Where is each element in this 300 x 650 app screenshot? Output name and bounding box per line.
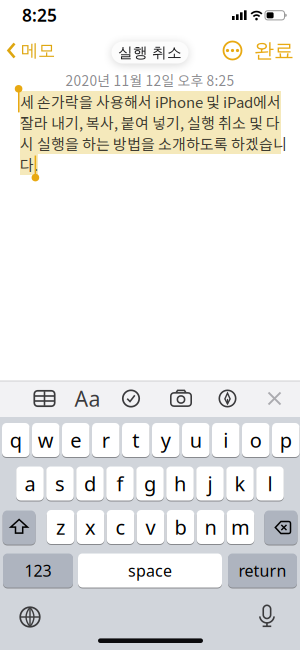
staticText: 잘라 내기, 복사, 붙여 넣기, 실행 취소 및 다	[20, 112, 280, 133]
button[interactable]: Markup	[218, 389, 236, 407]
button[interactable]: z	[47, 509, 74, 544]
staticText: 메모	[21, 40, 55, 61]
button[interactable]: More	[222, 40, 242, 60]
button[interactable]: Dictate	[256, 604, 278, 627]
button[interactable]: k	[226, 466, 254, 501]
button[interactable]: Next keyboard	[19, 606, 40, 627]
button[interactable]: x	[77, 509, 104, 544]
staticText: x	[85, 514, 96, 540]
staticText: f	[116, 470, 123, 497]
button[interactable]: 실행 취소	[111, 41, 188, 63]
button[interactable]: o	[242, 422, 270, 457]
staticText: d	[84, 470, 96, 497]
button[interactable]: space	[78, 553, 222, 588]
staticText: n	[204, 514, 216, 540]
staticText: return	[238, 560, 286, 581]
staticText: z	[56, 514, 65, 540]
staticText: o	[250, 427, 262, 453]
button[interactable]: f	[106, 466, 134, 501]
staticText: 8:25	[22, 3, 57, 26]
staticText: e	[70, 427, 81, 453]
staticText: 완료	[254, 38, 294, 63]
staticText: l	[267, 470, 272, 497]
button[interactable]: v	[137, 509, 164, 544]
button[interactable]: y	[152, 422, 180, 457]
button[interactable]: w	[32, 422, 60, 457]
button[interactable]: 123	[3, 553, 73, 588]
button[interactable]: Insert table	[33, 390, 55, 407]
staticText: v	[145, 514, 155, 540]
staticText: m	[231, 514, 250, 540]
staticText: g	[144, 470, 156, 497]
staticText: s	[55, 470, 65, 497]
staticText: y	[161, 427, 171, 453]
button[interactable]: l	[256, 466, 284, 501]
button[interactable]: Camera	[170, 389, 192, 407]
staticText: a	[24, 470, 35, 497]
staticText: space	[128, 560, 172, 581]
button[interactable]: Shift	[3, 510, 35, 545]
staticText: 123	[24, 560, 51, 581]
staticText: w	[38, 427, 54, 453]
button[interactable]: i	[212, 422, 240, 457]
button[interactable]: n	[197, 509, 224, 544]
staticText: t	[132, 427, 139, 453]
button[interactable]: d	[76, 466, 104, 501]
staticText: p	[280, 427, 292, 453]
button[interactable]: g	[136, 466, 164, 501]
staticText: r	[102, 427, 110, 453]
staticText: c	[115, 514, 125, 540]
staticText: q	[10, 427, 22, 453]
button[interactable]: e	[62, 422, 90, 457]
staticText: 시 실행을 하는 방법을 소개하도록 하겠습니	[20, 133, 287, 154]
button[interactable]: b	[167, 509, 194, 544]
button[interactable]: 메모	[0, 40, 55, 61]
button[interactable]: q	[2, 422, 30, 457]
button[interactable]: 완료	[254, 38, 294, 63]
staticText: h	[174, 470, 186, 497]
staticText: i	[223, 427, 228, 453]
button[interactable]: s	[46, 466, 74, 501]
button[interactable]: t	[122, 422, 150, 457]
button[interactable]: Checklist	[122, 389, 140, 407]
staticText: 세 손가락을 사용해서 iPhone 및 iPad에서	[20, 91, 281, 112]
staticText: 다.	[20, 154, 38, 175]
button[interactable]: m	[227, 509, 254, 544]
staticText: 실행 취소	[118, 43, 182, 61]
staticText: Aa	[74, 384, 100, 413]
button[interactable]: Delete	[264, 510, 297, 545]
button[interactable]: h	[166, 466, 194, 501]
button[interactable]: u	[182, 422, 210, 457]
staticText: k	[234, 470, 245, 497]
button[interactable]: j	[196, 466, 224, 501]
staticText: j	[207, 470, 212, 497]
button[interactable]: return	[228, 553, 297, 588]
button[interactable]: c	[107, 509, 134, 544]
button[interactable]: r	[92, 422, 120, 457]
button[interactable]: Formatting	[74, 384, 100, 413]
button[interactable]: Dismiss keyboard	[267, 391, 282, 406]
staticText: b	[174, 514, 186, 540]
staticText: u	[190, 427, 202, 453]
staticText: 2020년 11월 12일 오후 8:25	[65, 70, 234, 90]
button[interactable]: a	[16, 466, 44, 501]
button[interactable]: p	[272, 422, 300, 457]
